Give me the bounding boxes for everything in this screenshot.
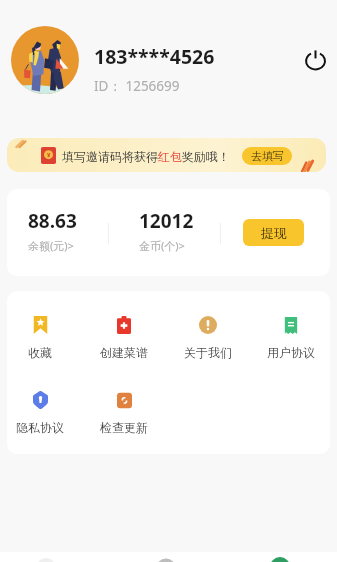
staticText: 隐私协议 [16, 420, 64, 435]
staticText: 金币(个)> [139, 238, 185, 253]
button[interactable]: 12012 [139, 208, 194, 253]
staticText: 创建菜谱 [100, 345, 148, 360]
button[interactable]: 关于我们 [174, 316, 242, 360]
staticText: 收藏 [28, 345, 52, 360]
staticText: 余额(元)> [28, 238, 74, 253]
button[interactable]: 隐私协议 [7, 391, 74, 435]
staticText: 88.63 [28, 208, 77, 234]
button[interactable] [11, 26, 79, 94]
staticText: ¥ [47, 151, 51, 159]
staticText: 填写邀请码将获得 [62, 149, 158, 164]
staticText: 去填写 [251, 149, 284, 163]
button[interactable]: 去填写 [242, 147, 292, 165]
button[interactable]: Recipes [142, 552, 190, 562]
staticText: 关于我们 [184, 345, 232, 360]
button[interactable]: Logout [300, 45, 330, 75]
staticText: 12012 [139, 208, 194, 234]
staticText: 奖励哦！ [182, 149, 230, 164]
staticText: 红包 [158, 149, 182, 164]
button[interactable]: 检查更新 [90, 391, 158, 435]
staticText: ID： 1256699 [94, 77, 180, 95]
button[interactable]: Profile [256, 552, 304, 562]
button[interactable]: 88.63 [28, 208, 77, 253]
staticText: 提现 [261, 225, 287, 241]
staticText: 183****4526 [94, 43, 215, 70]
button[interactable]: 提现 [243, 219, 304, 246]
button[interactable]: 创建菜谱 [90, 316, 158, 360]
button[interactable]: ¥ [7, 138, 326, 172]
staticText: 用户协议 [267, 345, 315, 360]
staticText: 检查更新 [100, 420, 148, 435]
button[interactable]: Home [22, 552, 70, 562]
button[interactable]: 用户协议 [257, 316, 325, 360]
button[interactable]: 收藏 [7, 316, 74, 360]
